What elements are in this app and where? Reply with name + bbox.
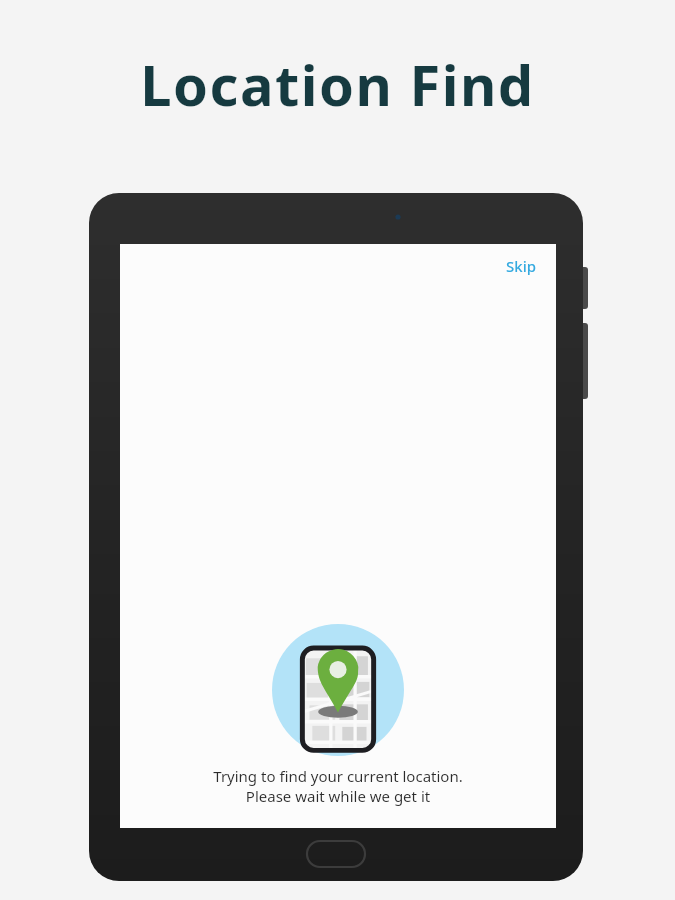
staticText: Trying to find your current location. Pl… [213,766,463,806]
staticText: Skip [506,256,536,276]
button[interactable]: Skip [498,252,544,280]
staticText: Location Find [140,46,535,122]
